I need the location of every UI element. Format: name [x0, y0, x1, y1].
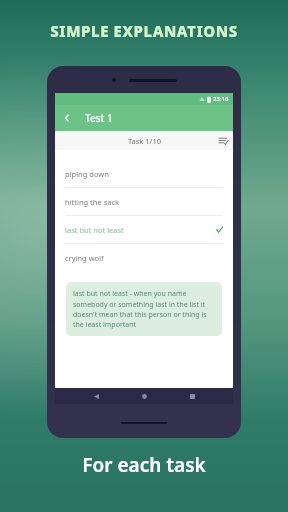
staticText: Test 1 — [85, 111, 113, 125]
button[interactable]: last but not least — [55, 216, 233, 243]
staticText: crying wolf — [65, 253, 104, 263]
staticText: 23:16 — [213, 95, 229, 103]
button[interactable]: Back — [55, 106, 79, 130]
button[interactable]: crying wolf — [55, 244, 233, 271]
staticText: SIMPLE EXPLANATIONS — [50, 21, 238, 41]
staticText: For each task — [82, 452, 206, 478]
staticText: last but not least — [65, 225, 124, 235]
button[interactable]: piping down — [55, 160, 233, 187]
button[interactable]: hitting the sack — [55, 188, 233, 215]
button[interactable]: Back — [89, 389, 103, 403]
button[interactable]: Task list — [214, 131, 233, 150]
staticText: piping down — [65, 169, 109, 179]
staticText: last but not least - when you name someb… — [73, 289, 215, 329]
staticText: Task 1/10 — [128, 136, 161, 146]
button[interactable]: Recents — [185, 389, 199, 403]
button[interactable]: Home — [137, 389, 151, 403]
staticText: hitting the sack — [65, 197, 120, 207]
